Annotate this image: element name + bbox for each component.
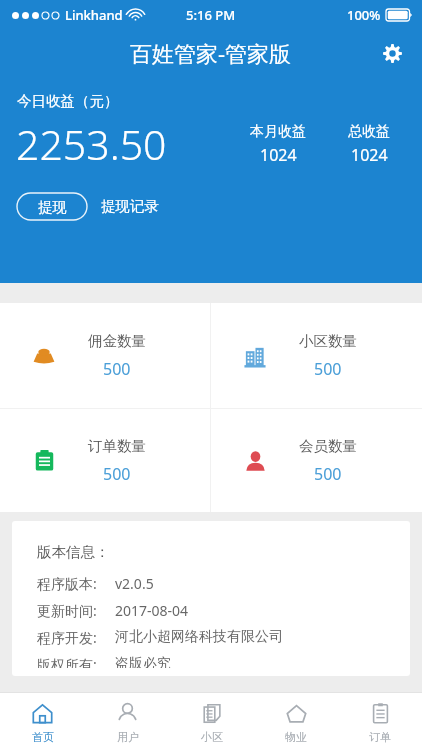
staticText: 今日收益（元） bbox=[17, 92, 119, 110]
staticText: 1024 bbox=[351, 144, 388, 166]
staticText: 总收益 bbox=[348, 123, 390, 141]
staticText: 2017-08-04 bbox=[115, 601, 189, 620]
button[interactable]: 版本信息： bbox=[12, 521, 410, 676]
staticText: 佣金数量 bbox=[88, 332, 146, 350]
button[interactable]: 会员数量 bbox=[211, 409, 422, 512]
staticText: 程序版本: bbox=[37, 574, 115, 593]
staticText: 用户 bbox=[117, 730, 139, 744]
staticText: 会员数量 bbox=[299, 437, 357, 455]
staticText: 更新时间: bbox=[37, 601, 115, 620]
staticText: 版本信息： bbox=[37, 543, 110, 561]
staticText: 500 bbox=[103, 463, 131, 485]
staticText: 版权所有: bbox=[37, 655, 115, 668]
button[interactable]: Settings bbox=[372, 33, 412, 73]
button[interactable]: 订单 bbox=[338, 692, 422, 750]
button[interactable]: 小区 bbox=[170, 692, 254, 750]
button[interactable]: 物业 bbox=[254, 692, 338, 750]
staticText: 订单 bbox=[369, 730, 391, 744]
staticText: 本月收益 bbox=[250, 123, 306, 141]
button[interactable]: 提现记录 bbox=[87, 192, 169, 220]
button[interactable]: 订单数量 bbox=[0, 409, 210, 512]
staticText: 盗版必究 bbox=[115, 655, 171, 668]
staticText: 1024 bbox=[260, 144, 297, 166]
staticText: 订单数量 bbox=[88, 437, 146, 455]
button[interactable]: 小区数量 bbox=[211, 303, 422, 408]
staticText: 500 bbox=[103, 358, 131, 380]
staticText: v2.0.5 bbox=[115, 574, 154, 593]
staticText: 100% bbox=[347, 6, 381, 24]
staticText: 首页 bbox=[32, 730, 54, 744]
staticText: 小区 bbox=[201, 730, 223, 744]
staticText: 2253.50 bbox=[16, 116, 167, 172]
staticText: 5:16 PM bbox=[186, 6, 236, 24]
button[interactable]: 提现 bbox=[17, 193, 87, 220]
staticText: 小区数量 bbox=[299, 332, 357, 350]
staticText: 提现 bbox=[38, 198, 67, 216]
staticText: 物业 bbox=[285, 730, 307, 744]
staticText: 500 bbox=[314, 358, 342, 380]
staticText: 提现记录 bbox=[101, 197, 159, 215]
button[interactable]: 用户 bbox=[85, 692, 170, 750]
staticText: 500 bbox=[314, 463, 342, 485]
staticText: 河北小超网络科技有限公司 bbox=[115, 628, 283, 646]
staticText: Linkhand bbox=[65, 6, 123, 24]
staticText: 程序开发: bbox=[37, 628, 115, 647]
staticText: 百姓管家-管家版 bbox=[130, 38, 292, 68]
button[interactable]: 佣金数量 bbox=[0, 303, 210, 408]
button[interactable]: 首页 bbox=[0, 692, 85, 750]
